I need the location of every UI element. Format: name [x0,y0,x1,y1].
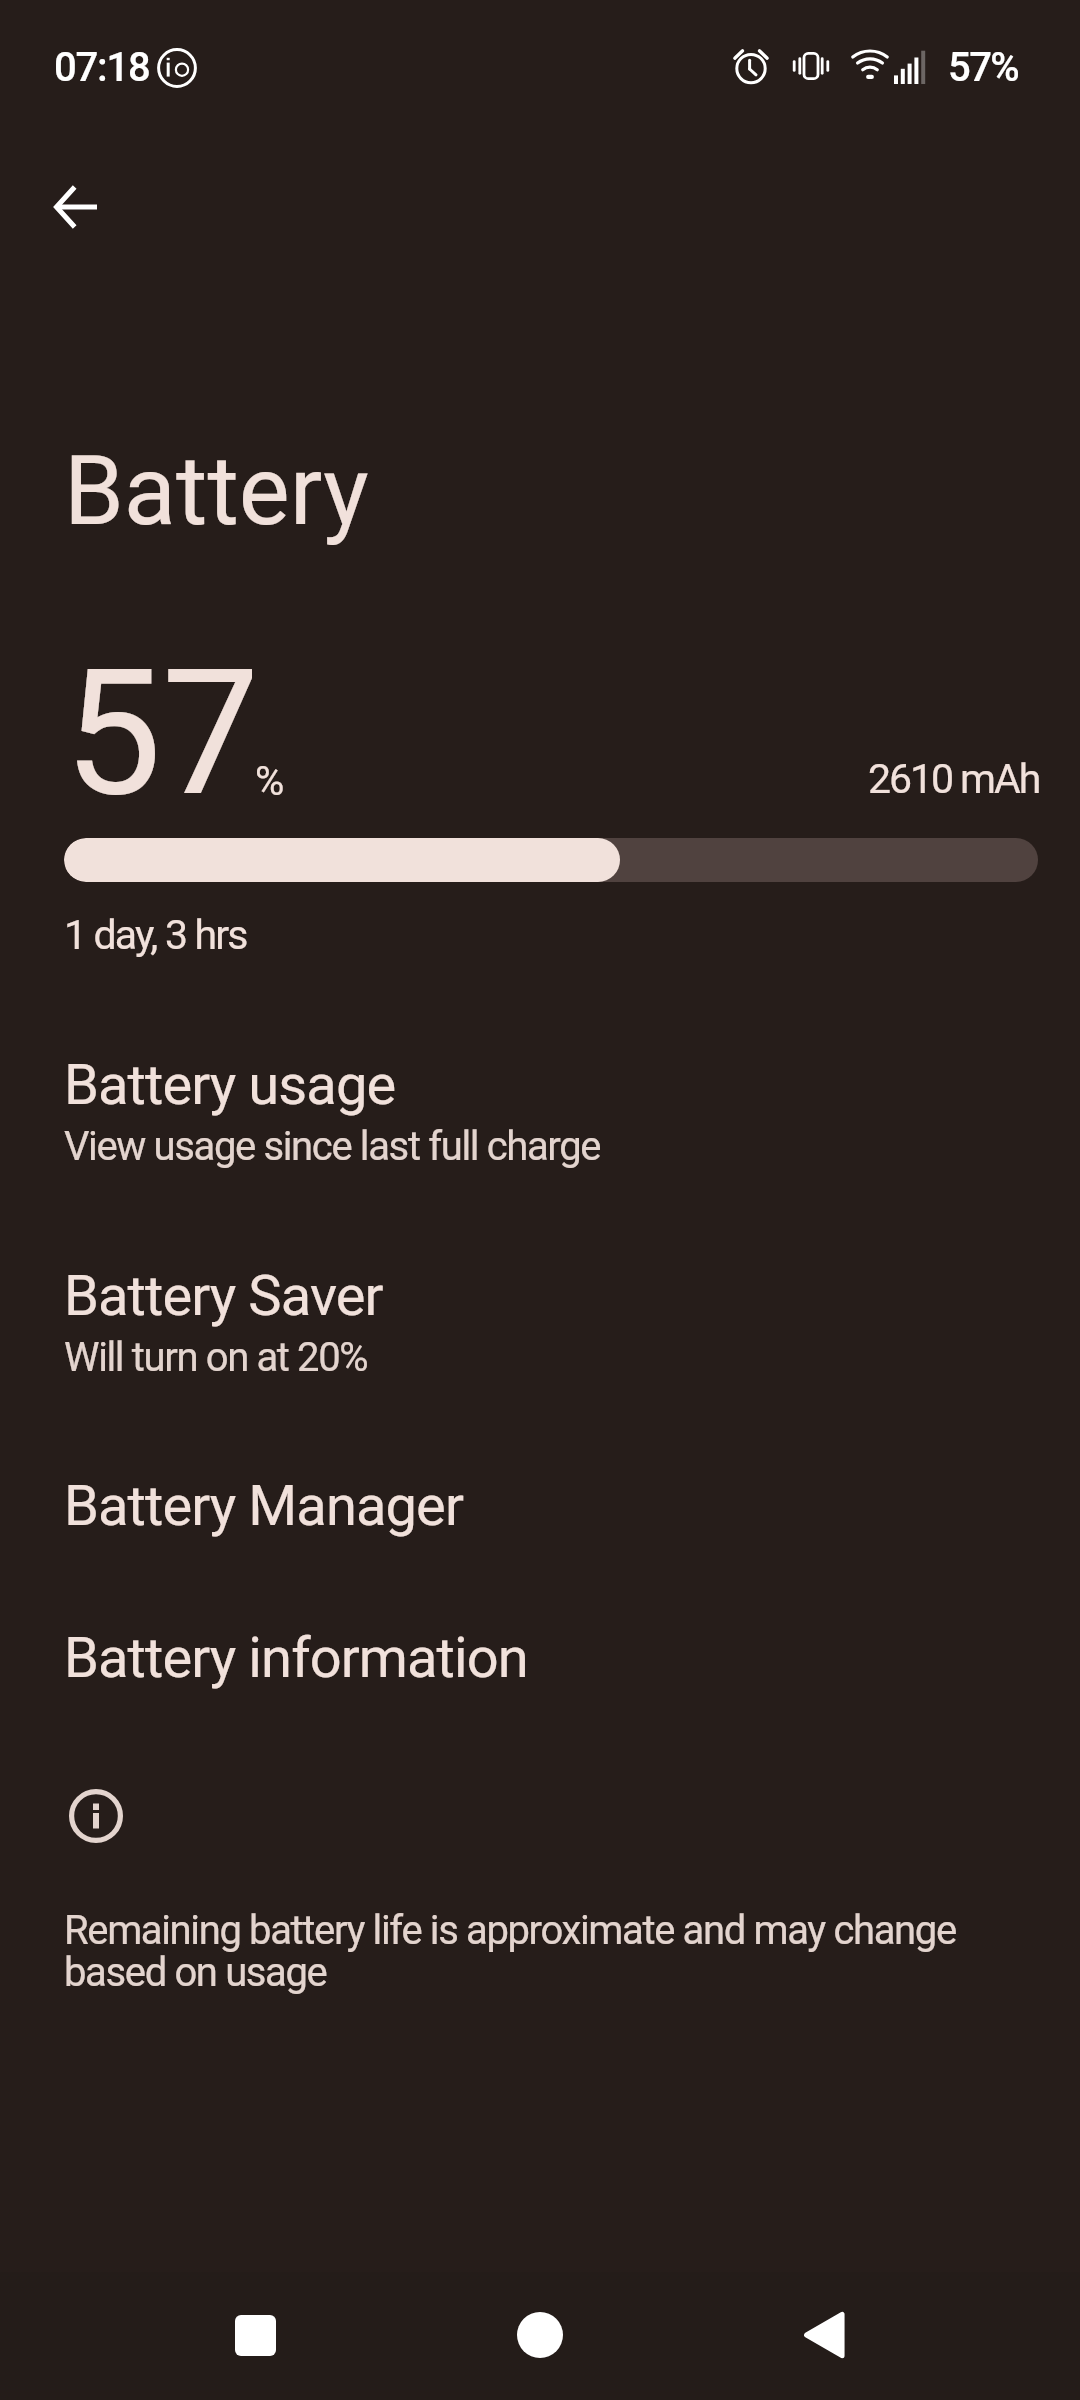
staticText: Battery Saver [64,1263,383,1329]
staticText: Battery [64,435,369,548]
button[interactable]: Battery information [0,1585,1080,1737]
button[interactable]: Battery usage [0,1012,1080,1223]
button[interactable]: Navigate up [28,159,124,255]
staticText: 07:18 [54,44,150,91]
staticText: 57% [948,44,1019,91]
staticText: Battery Manager [64,1473,463,1539]
staticText: % [255,758,285,805]
button[interactable]: Battery Saver [0,1223,1080,1433]
button[interactable]: Home [441,2272,638,2400]
button[interactable]: Battery Manager [0,1433,1080,1585]
button[interactable]: Recent apps [157,2272,354,2400]
button[interactable]: Back [725,2272,922,2400]
staticText: Battery information [64,1625,528,1691]
staticText: Battery usage [64,1052,396,1118]
staticText: Remaining battery life is approximate an… [64,1907,984,1996]
staticText: Will turn on at 20% [64,1334,368,1381]
staticText: 2610 mAh [868,755,1040,803]
staticText: 1 day, 3 hrs [64,911,247,959]
staticText: View usage since last full charge [64,1123,601,1170]
staticText: 57 [64,632,260,836]
